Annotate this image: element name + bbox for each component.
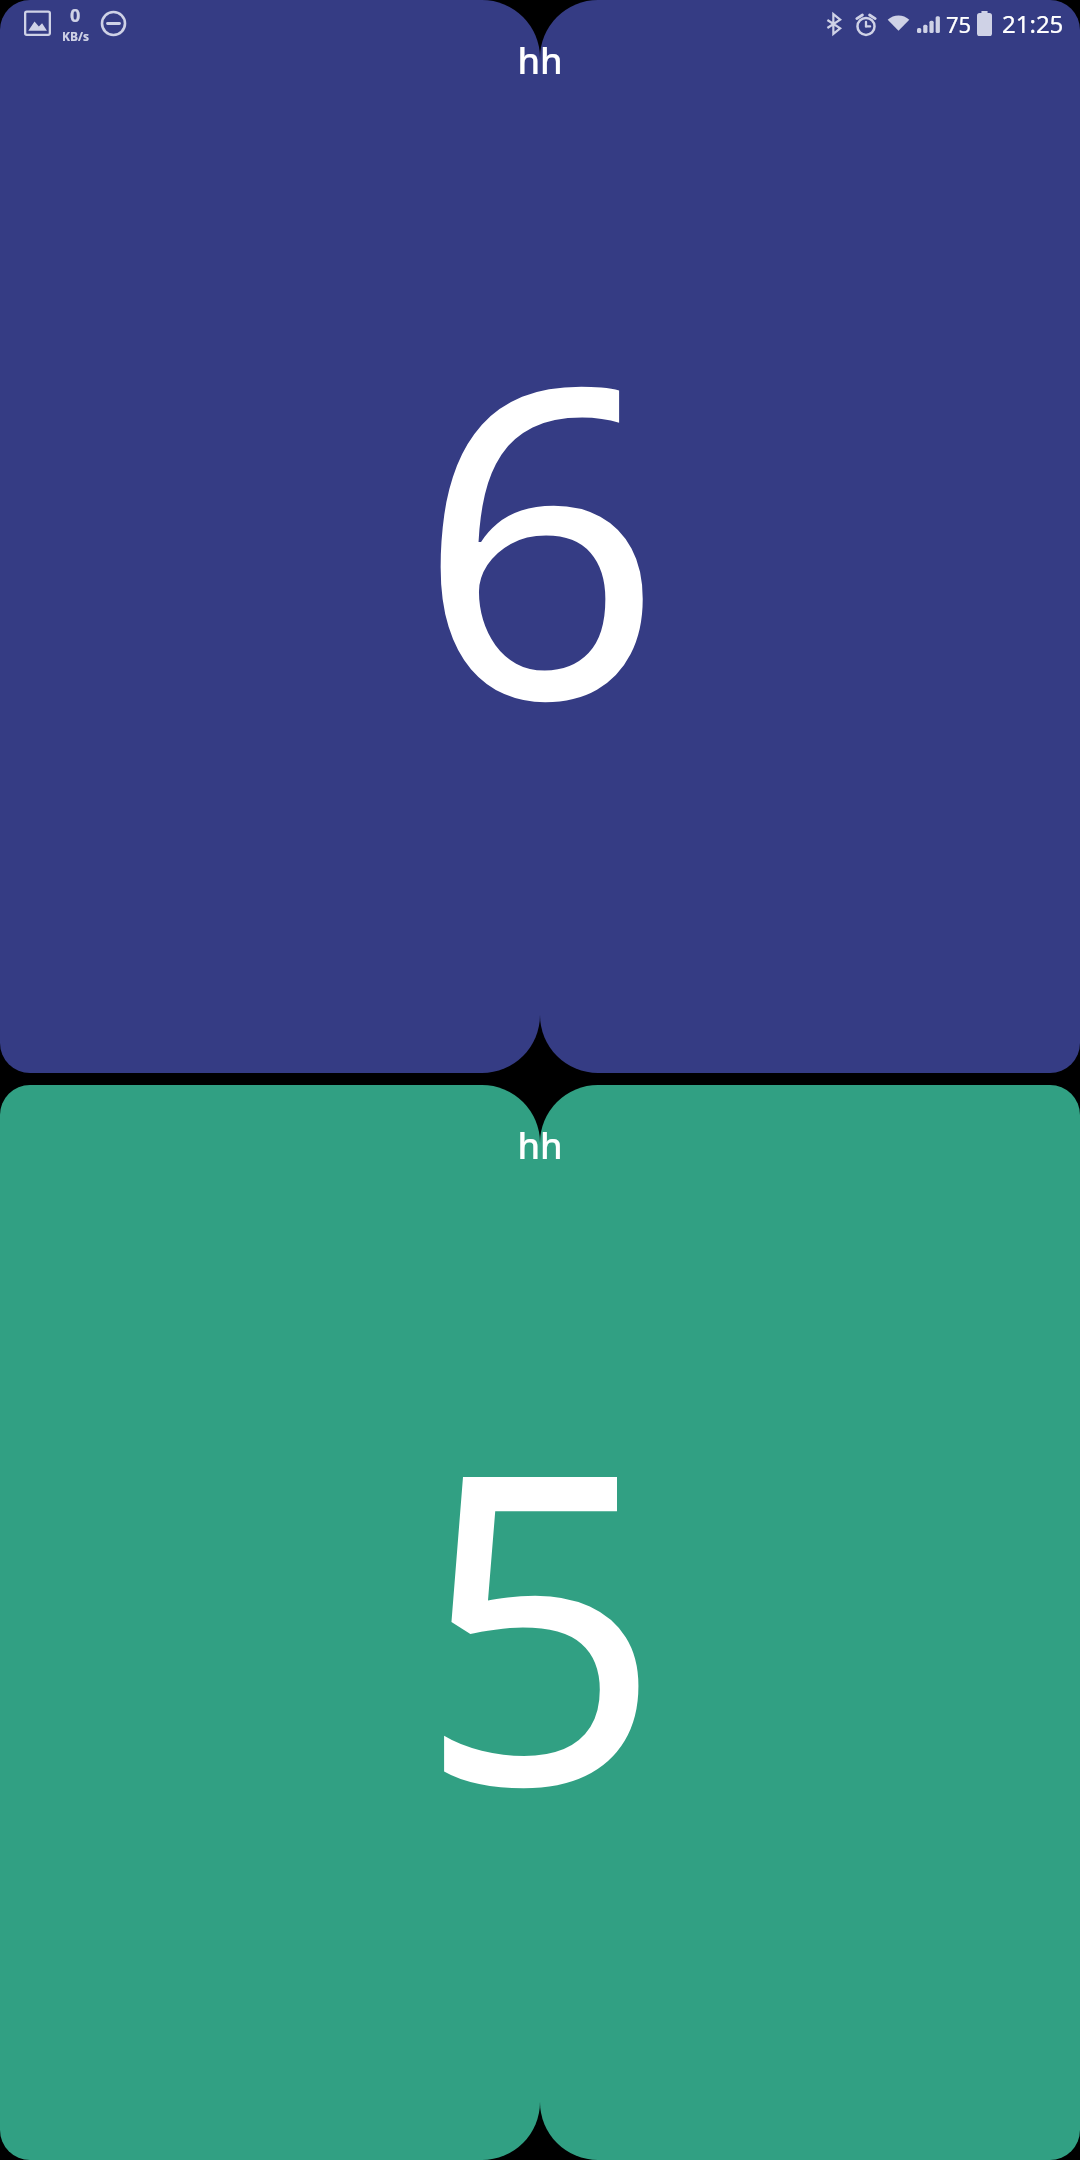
staticText: 21:25	[1002, 7, 1064, 40]
button[interactable]: hh	[0, 1085, 1080, 2160]
staticText: 0	[70, 3, 81, 28]
staticText: KB/s	[62, 28, 89, 44]
staticText: 6	[417, 238, 663, 824]
staticText: 75	[946, 9, 972, 39]
other: Data usage	[24, 10, 51, 37]
other: Do not disturb	[100, 10, 127, 37]
staticText: 5	[417, 1324, 663, 1910]
button[interactable]: hh	[0, 0, 1080, 1073]
staticText: hh	[517, 1121, 563, 1170]
staticText: hh	[517, 36, 563, 85]
